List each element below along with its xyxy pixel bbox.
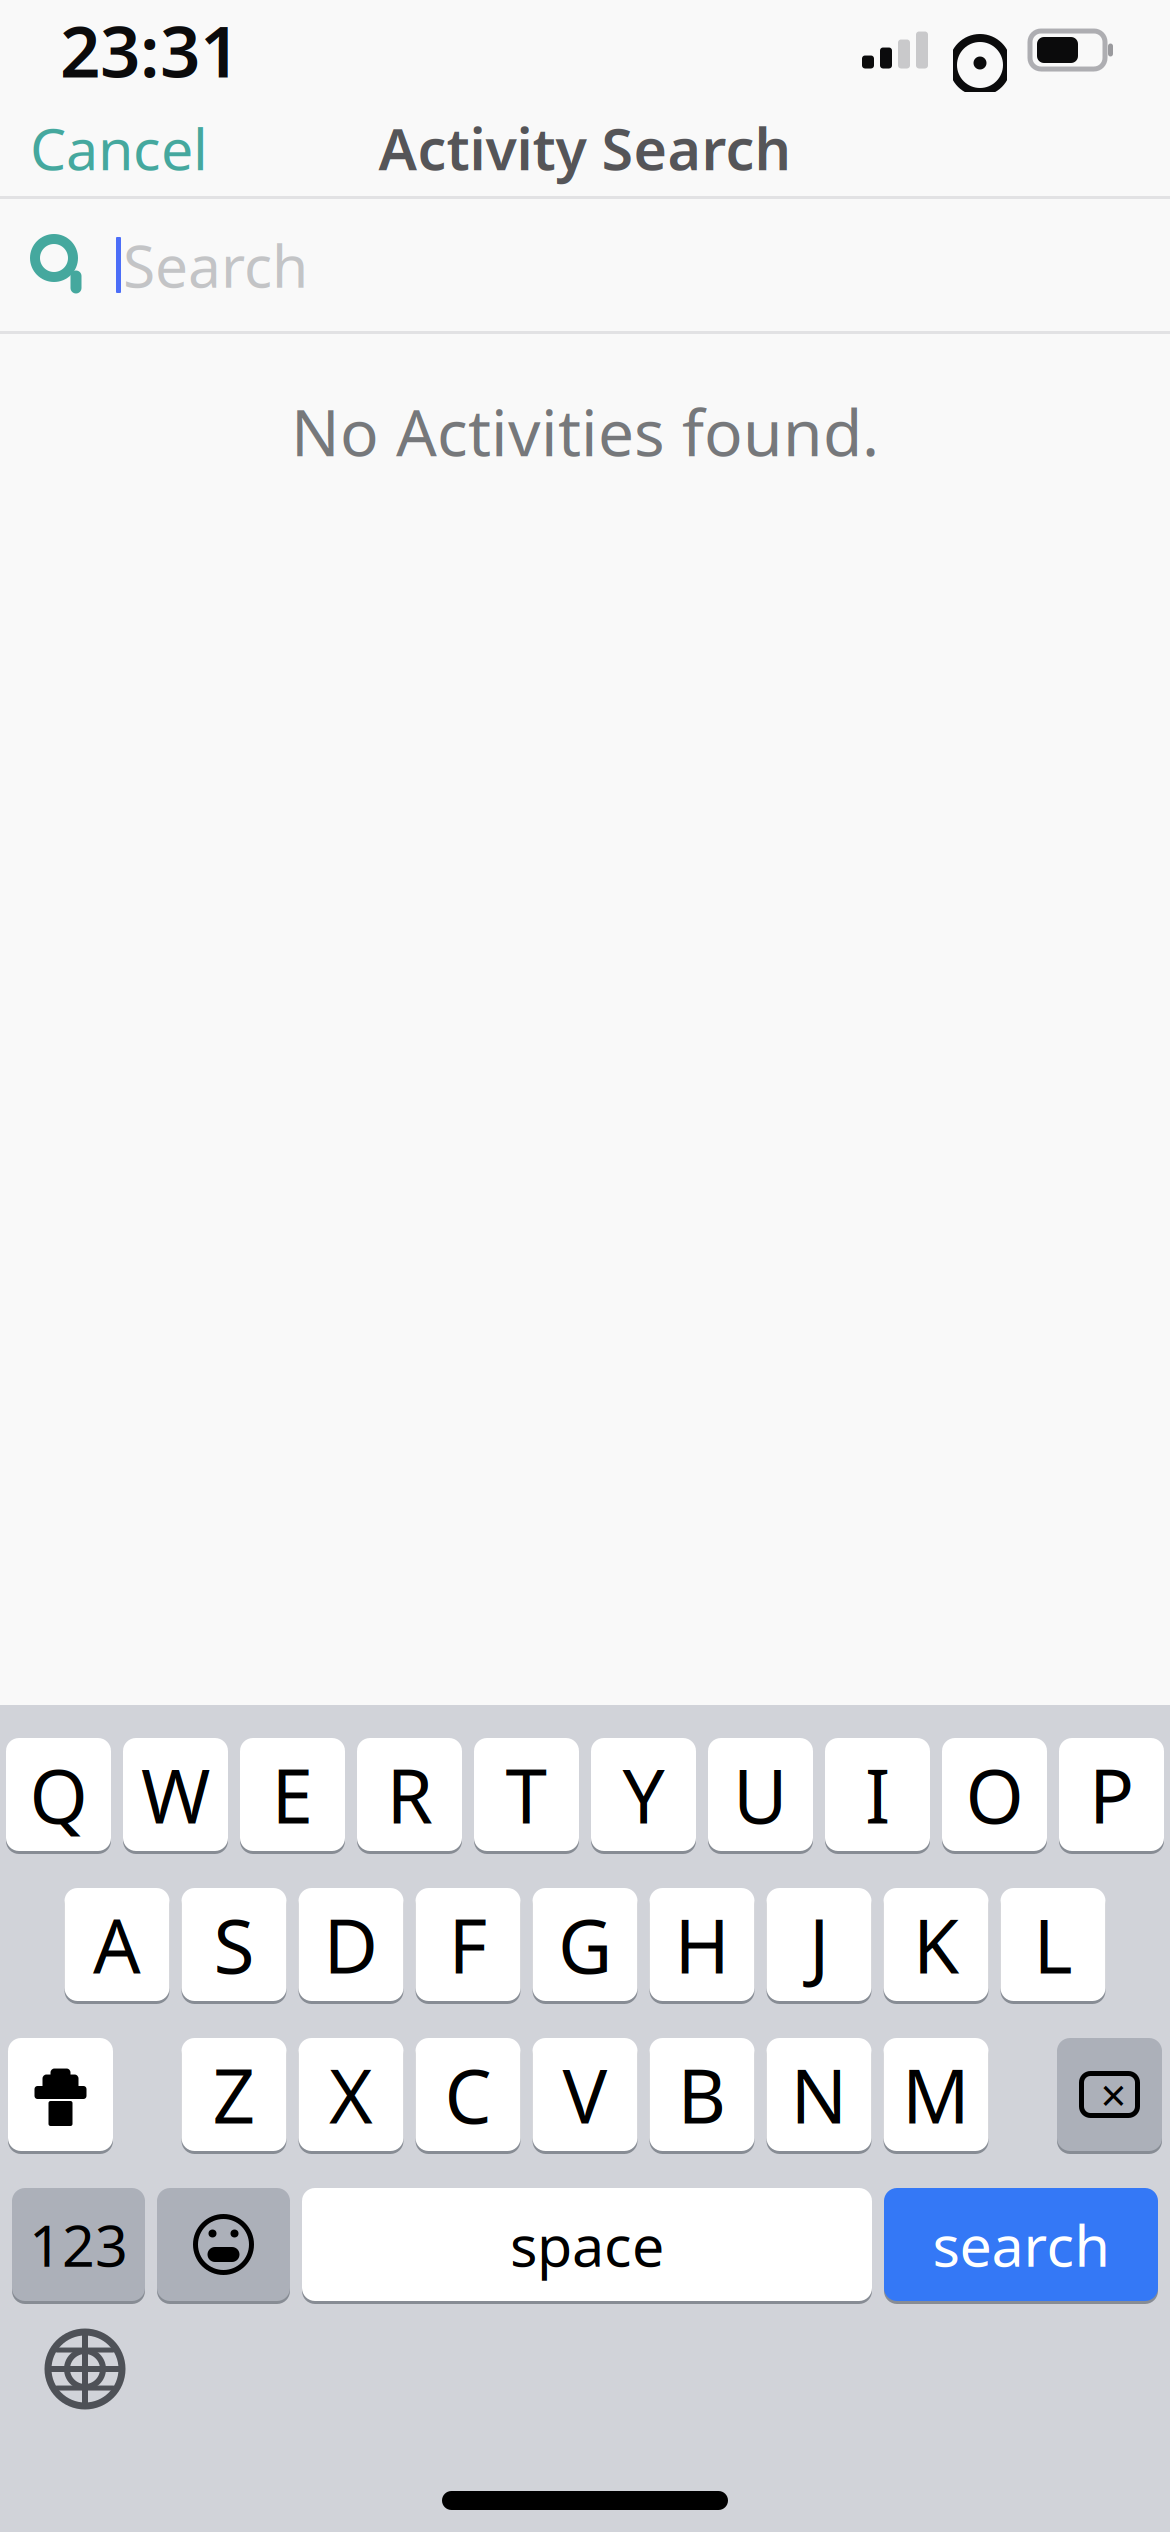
staticText: E	[271, 1745, 313, 1844]
button[interactable]: Shift	[8, 2035, 113, 2154]
button[interactable]: J	[766, 1885, 871, 2004]
staticText: J	[809, 1895, 829, 1994]
staticText: 23:31	[60, 3, 240, 97]
button[interactable]: K	[883, 1885, 988, 2004]
button[interactable]: T	[474, 1735, 579, 1854]
button[interactable]: H	[649, 1885, 754, 2004]
staticText: S	[213, 1895, 254, 1994]
button[interactable]: C	[415, 2035, 520, 2154]
staticText: Cancel	[30, 110, 208, 186]
button[interactable]: N	[766, 2035, 871, 2154]
staticText: X	[329, 2045, 373, 2144]
staticText: 123	[29, 2206, 128, 2282]
staticText: P	[1089, 1745, 1134, 1844]
staticText: A	[93, 1895, 141, 1994]
button[interactable]: R	[357, 1735, 462, 1854]
staticText: K	[913, 1895, 959, 1994]
staticText: G	[558, 1895, 612, 1994]
staticText: M	[902, 2045, 970, 2144]
staticText: Search	[123, 226, 308, 304]
staticText: D	[323, 1895, 378, 1994]
button[interactable]: E	[240, 1735, 345, 1854]
button[interactable]: M	[883, 2035, 988, 2154]
button[interactable]: 123	[12, 2185, 145, 2304]
staticText: Y	[622, 1745, 664, 1844]
staticText: space	[510, 2206, 664, 2282]
button[interactable]: Z	[181, 2035, 286, 2154]
button[interactable]: Q	[6, 1735, 111, 1854]
button[interactable]: P	[1059, 1735, 1164, 1854]
button[interactable]: W	[123, 1735, 228, 1854]
button[interactable]: search	[884, 2185, 1158, 2304]
staticText: search	[932, 2206, 1109, 2282]
button[interactable]: F	[415, 1885, 520, 2004]
staticText: W	[141, 1745, 210, 1844]
staticText: O	[965, 1745, 1023, 1844]
button[interactable]: G	[532, 1885, 637, 2004]
button[interactable]: U	[708, 1735, 813, 1854]
staticText: No Activities found.	[291, 389, 879, 474]
button[interactable]: D	[298, 1885, 403, 2004]
button[interactable]: S	[181, 1885, 286, 2004]
button[interactable]: L	[1000, 1885, 1105, 2004]
button[interactable]: V	[532, 2035, 637, 2154]
staticText: Q	[29, 1745, 87, 1844]
button[interactable]: Y	[591, 1735, 696, 1854]
staticText: ×	[1100, 2064, 1126, 2125]
button[interactable]: Cancel	[6, 92, 232, 204]
button[interactable]: A	[64, 1885, 169, 2004]
button[interactable]: space	[302, 2185, 872, 2304]
staticText: V	[562, 2045, 607, 2144]
staticText: I	[865, 1745, 890, 1844]
staticText: L	[1033, 1895, 1072, 1994]
button[interactable]: B	[649, 2035, 754, 2154]
staticText: U	[733, 1745, 788, 1844]
staticText: Activity Search	[378, 110, 791, 186]
button[interactable]: Next keyboard	[40, 2324, 130, 2414]
staticText: N	[790, 2045, 847, 2144]
button[interactable]: X	[298, 2035, 403, 2154]
button[interactable]: Emoji	[157, 2185, 290, 2304]
staticText: F	[448, 1895, 487, 1994]
staticText: B	[677, 2045, 726, 2144]
staticText: H	[674, 1895, 729, 1994]
staticText: Z	[212, 2045, 255, 2144]
button[interactable]: Delete	[1057, 2035, 1162, 2154]
staticText: R	[386, 1745, 432, 1844]
button[interactable]: I	[825, 1735, 930, 1854]
button[interactable]: O	[942, 1735, 1047, 1854]
button[interactable]: Search	[0, 199, 1170, 331]
staticText: T	[505, 1745, 547, 1844]
staticText: C	[444, 2045, 491, 2144]
